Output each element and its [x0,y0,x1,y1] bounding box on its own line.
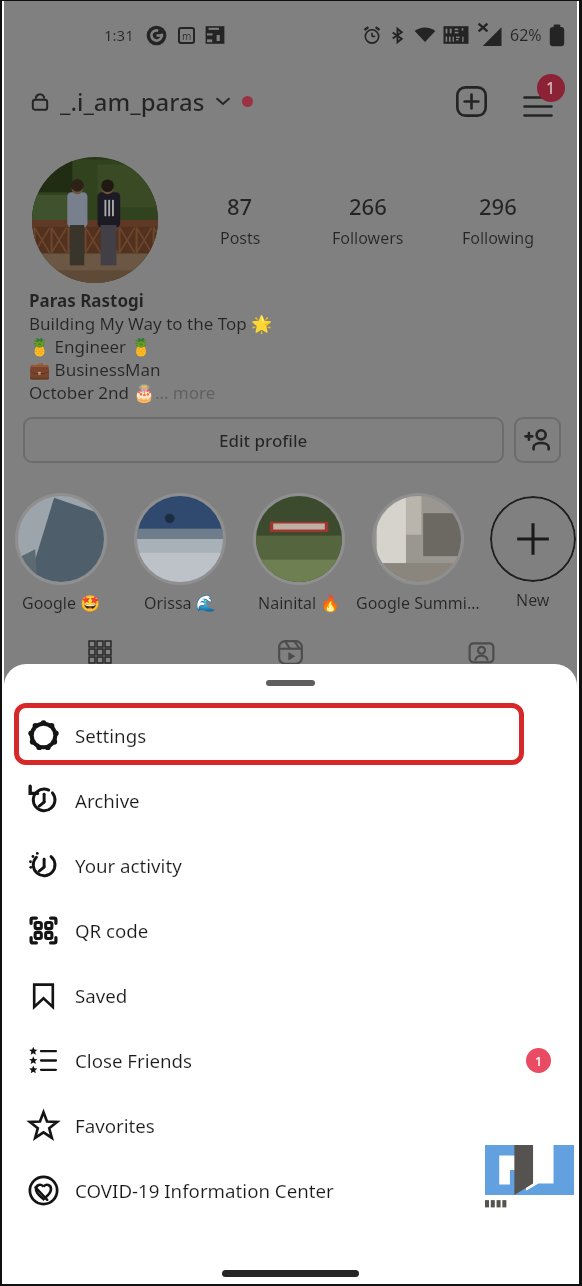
button[interactable]: Settings [4,703,577,768]
staticText: Settings [75,723,147,748]
staticText: 1:31 [104,25,134,45]
button[interactable]: Close Friends [4,1028,577,1093]
staticText: Edit profile [219,429,308,452]
staticText: Close Friends [75,1048,193,1073]
button[interactable]: 266 [308,191,428,249]
staticText: 1 [535,1052,543,1070]
button[interactable]: Edit profile [23,417,504,463]
button[interactable]: 87 [180,191,300,249]
button[interactable]: Saved [4,963,577,1028]
staticText: 62% [510,24,542,46]
button[interactable]: Tagged [386,632,577,672]
staticText: Building My Way to the Top 🌟 [29,312,273,335]
staticText: … more [155,381,216,404]
staticText: Orissa 🌊 [144,592,216,613]
button[interactable]: Profile photo [32,157,158,283]
button[interactable]: Menu [523,86,553,116]
staticText: New [516,589,550,611]
button[interactable]: New post [455,85,487,117]
staticText: Your activity [75,853,182,878]
staticText: _.i_am_paras [60,85,205,118]
button[interactable]: New highlight [475,493,582,611]
staticText: 💼 BusinessMan [29,358,161,381]
button[interactable]: QR code [4,898,577,963]
staticText: COVID-19 Information Center [75,1178,334,1203]
staticText: 1 [546,77,556,99]
staticText: Favorites [75,1113,155,1138]
staticText: October 2nd 🎂 [29,381,155,404]
staticText: 87 [227,191,253,221]
button[interactable]: Grid [4,632,195,672]
button[interactable]: Google Summi… [356,493,480,613]
staticText: Posts [220,227,261,249]
staticText: Google Summi… [356,592,480,613]
staticText: Google 🤩 [22,592,101,613]
button[interactable]: 296 [438,191,558,249]
staticText: QR code [75,918,149,943]
staticText: Archive [75,788,140,813]
button[interactable]: COVID-19 Information Center [4,1158,577,1223]
button[interactable]: Orissa 🌊 [118,493,242,613]
staticText: Paras Rastogi [29,289,144,312]
button[interactable]: Reels [195,632,386,672]
button[interactable]: Favorites [4,1093,577,1158]
staticText: Nainital 🔥 [258,592,341,613]
button[interactable]: Archive [4,768,577,833]
button[interactable]: Google 🤩 [0,493,123,613]
staticText: 266 [349,191,387,221]
button[interactable]: Nainital 🔥 [237,493,361,613]
staticText: Saved [75,983,128,1008]
button[interactable]: Discover people [514,417,561,463]
staticText: m [182,29,192,43]
staticText: Following [462,227,535,249]
button[interactable]: Your activity [4,833,577,898]
staticText: 🍍 Engineer 🍍 [29,335,152,358]
staticText: 296 [479,191,517,221]
staticText: Followers [332,227,404,249]
